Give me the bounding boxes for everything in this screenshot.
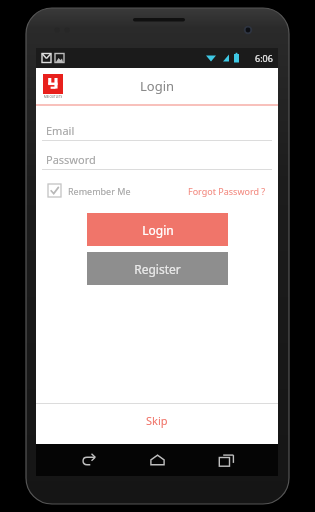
button[interactable]: Login — [87, 213, 228, 246]
button[interactable]: Back — [71, 444, 105, 476]
staticText: Email — [46, 123, 75, 138]
staticText: Remember Me — [68, 185, 131, 197]
button[interactable]: App logo — [43, 74, 63, 99]
button[interactable]: Register — [87, 252, 228, 285]
button[interactable]: Home — [140, 444, 174, 476]
staticText: 6:06 — [255, 52, 273, 64]
staticText: Skip — [146, 413, 168, 428]
button[interactable]: Forgot Password ? — [188, 185, 266, 197]
button[interactable]: Recent apps — [209, 444, 243, 476]
staticText: Forgot Password ? — [188, 185, 266, 197]
staticText: Password — [46, 152, 96, 167]
staticText: Login — [140, 77, 175, 95]
staticText: MB OUTLETS — [44, 95, 63, 99]
button[interactable]: Email — [42, 120, 272, 141]
staticText: Login — [142, 222, 174, 238]
button[interactable]: Remember Me — [48, 184, 131, 197]
button[interactable]: Skip — [36, 404, 278, 436]
button[interactable]: Password — [42, 149, 272, 170]
staticText: Register — [134, 261, 181, 277]
